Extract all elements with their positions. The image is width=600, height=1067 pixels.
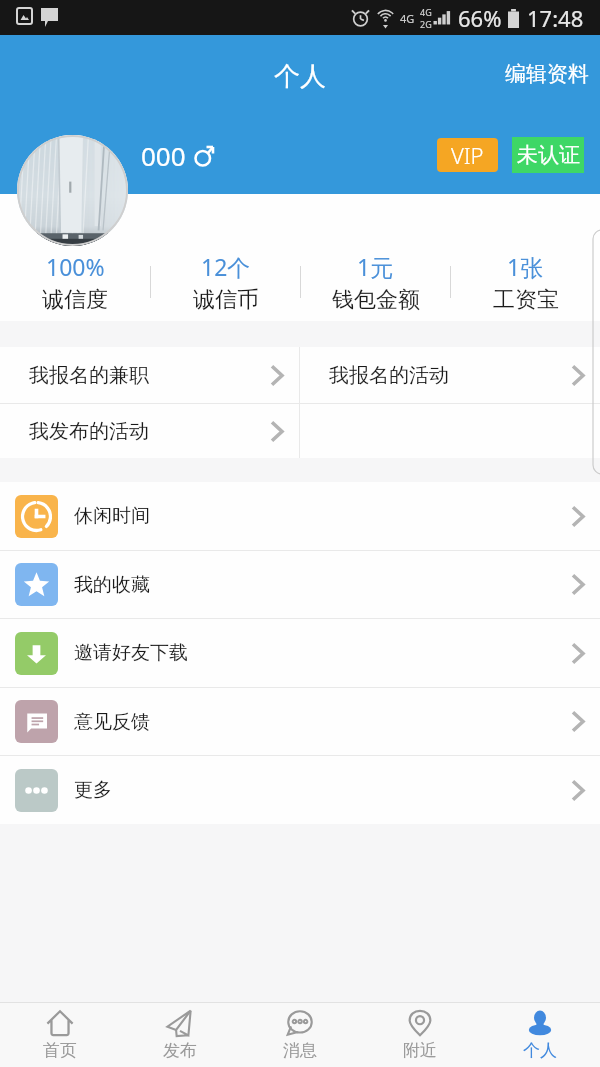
staticText: 12个: [201, 251, 251, 282]
staticText: 意见反馈: [74, 710, 150, 734]
staticText: 工资宝: [493, 286, 559, 314]
staticText: 个人: [274, 60, 326, 93]
button[interactable]: 发布: [120, 1003, 240, 1067]
staticText: 邀请好友下载: [74, 641, 188, 665]
staticText: 1张: [507, 251, 544, 282]
button[interactable]: 消息: [240, 1003, 360, 1067]
staticText: 17:48: [527, 3, 584, 33]
staticText: 我报名的兼职: [29, 363, 149, 388]
staticText: 000: [141, 138, 186, 173]
staticText: 休闲时间: [74, 504, 150, 528]
button[interactable]: 我报名的兼职: [0, 347, 299, 403]
button[interactable]: VIP: [437, 138, 498, 172]
staticText: 4G: [420, 6, 432, 18]
button[interactable]: 未认证: [512, 137, 584, 173]
staticText: 1元: [357, 251, 394, 282]
button[interactable]: 我发布的活动: [0, 404, 299, 458]
staticText: 附近: [403, 1040, 437, 1061]
staticText: 编辑资料: [505, 61, 589, 87]
staticText: 我发布的活动: [29, 419, 149, 444]
staticText: 钱包金额: [332, 286, 420, 314]
button[interactable]: 个人: [480, 1003, 600, 1067]
staticText: VIP: [451, 140, 484, 170]
button[interactable]: 100%: [0, 243, 150, 321]
button[interactable]: 休闲时间: [0, 482, 600, 550]
button[interactable]: 编辑资料: [499, 57, 595, 91]
staticText: 诚信币: [193, 286, 259, 314]
button[interactable]: 12个: [151, 243, 300, 321]
staticText: 未认证: [517, 142, 580, 168]
staticText: 我报名的活动: [329, 363, 449, 388]
staticText: 更多: [74, 778, 112, 802]
button[interactable]: 更多: [0, 756, 600, 824]
button[interactable]: 首页: [0, 1003, 120, 1067]
button[interactable]: 1元: [301, 243, 450, 321]
staticText: 我的收藏: [74, 573, 150, 597]
staticText: 发布: [163, 1040, 197, 1061]
staticText: 100%: [46, 251, 105, 282]
button[interactable]: Profile photo: [17, 135, 128, 246]
button[interactable]: 邀请好友下载: [0, 619, 600, 687]
button[interactable]: 我报名的活动: [300, 347, 600, 403]
staticText: 首页: [43, 1040, 77, 1061]
button[interactable]: 1张: [451, 243, 600, 321]
staticText: 4G: [400, 11, 415, 26]
button[interactable]: 附近: [360, 1003, 480, 1067]
staticText: 诚信度: [42, 286, 108, 314]
staticText: 个人: [523, 1040, 557, 1061]
staticText: 消息: [283, 1040, 317, 1061]
staticText: 2G: [420, 18, 432, 30]
button[interactable]: 意见反馈: [0, 688, 600, 755]
staticText: 66%: [458, 3, 502, 33]
button[interactable]: 我的收藏: [0, 551, 600, 618]
